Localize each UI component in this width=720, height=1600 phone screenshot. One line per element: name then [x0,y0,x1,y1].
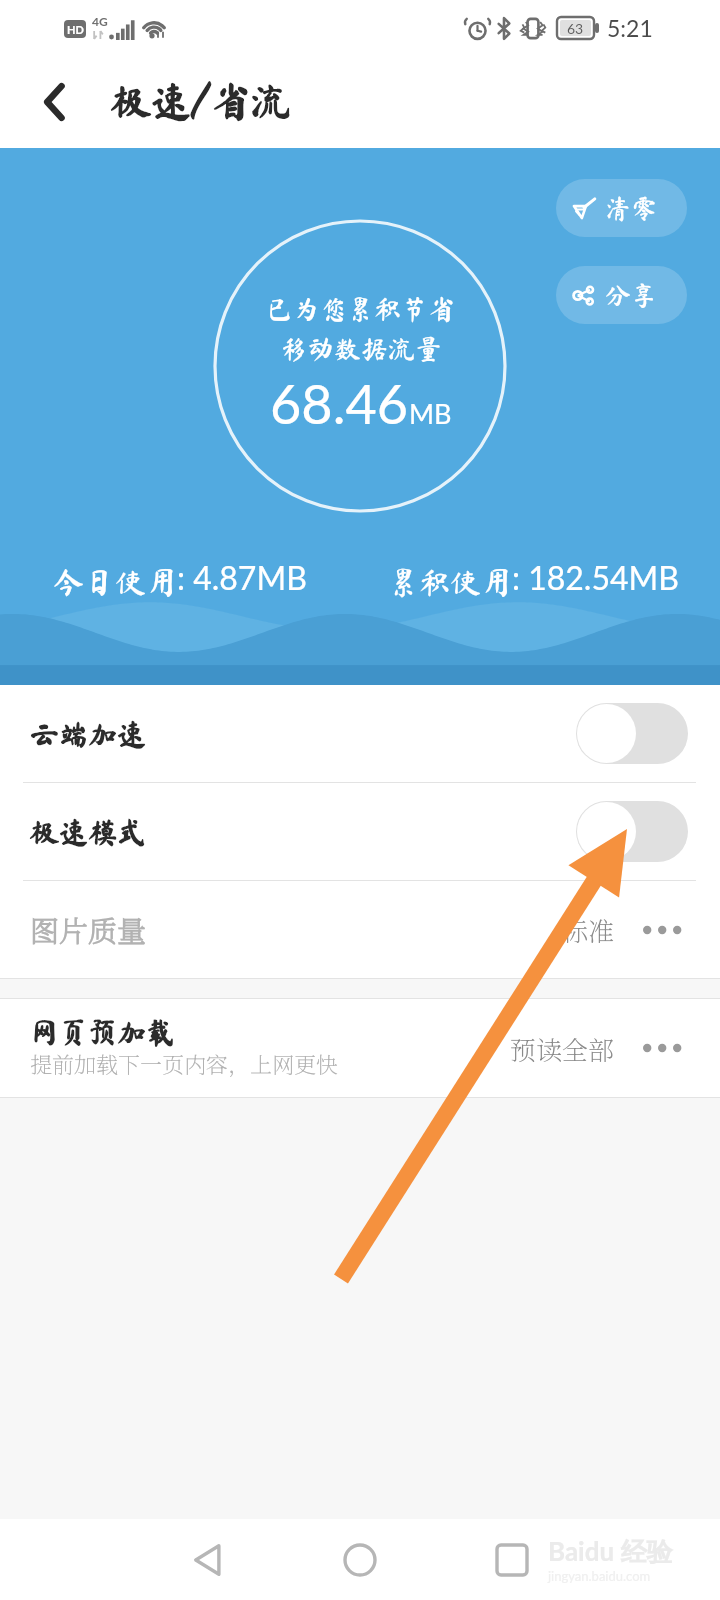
staticText: 分享 [605,282,658,308]
button[interactable]: Toggle [576,703,688,764]
button[interactable]: Recent apps [470,1519,554,1600]
staticText: : 182.54MB [512,558,679,596]
button[interactable]: 极速模式 [0,783,720,880]
staticText: 预读全部 [510,1030,615,1067]
button[interactable]: 云端加速 [0,685,720,782]
staticText: 4G [92,14,108,28]
button[interactable]: Back [26,74,82,130]
staticText: 极速/省流 [111,81,291,121]
staticText: 云端加速 [30,719,147,748]
staticText: 提前加载下一页内容，上网更快 [30,1048,339,1080]
staticText: jingyan.baidu.com [548,1568,651,1584]
button[interactable]: Back [166,1519,250,1600]
staticText: 5:21 [607,14,653,42]
staticText: 移动数据流量 [280,335,442,362]
staticText: MB [409,397,452,429]
button[interactable]: Home [318,1519,402,1600]
button[interactable]: 清零 [556,179,687,237]
staticText: 68.46 [270,371,409,436]
button[interactable]: Toggle [576,801,688,862]
staticText: Baidu 经验 [548,1535,673,1568]
staticText: 极速模式 [30,817,147,846]
staticText: HD [67,23,84,36]
staticText: : 4.87MB [177,558,307,596]
staticText: 63 [567,20,584,37]
staticText: 清零 [605,195,658,221]
button[interactable]: 图片质量 [0,881,720,978]
staticText: 图片质量 [30,909,147,951]
staticText: 已为您累积节省 [266,295,455,322]
staticText: 标准 [562,911,615,948]
staticText: 今日使用 [53,567,177,598]
staticText: 网页预加载 [30,1017,176,1046]
button[interactable]: 分享 [556,266,687,324]
button[interactable]: 网页预加载 [0,999,720,1097]
staticText: 累积使用 [388,567,512,598]
